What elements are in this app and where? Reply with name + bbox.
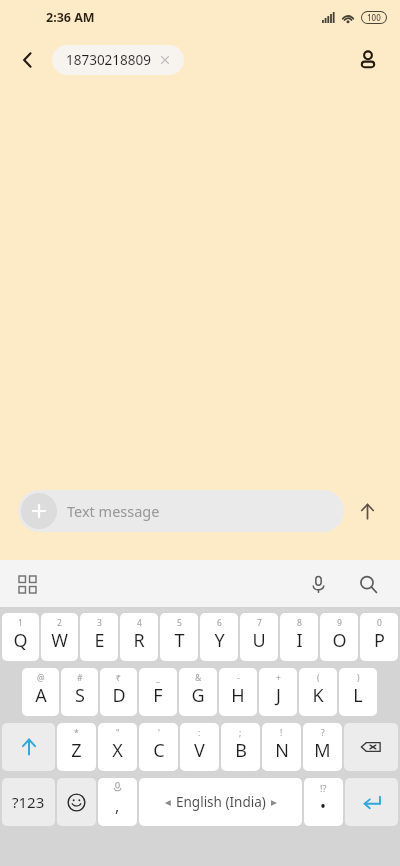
button[interactable]: ₹ bbox=[100, 668, 137, 716]
button[interactable]: Add attachment bbox=[21, 493, 57, 529]
staticText: ' bbox=[158, 727, 160, 739]
button[interactable]: 1 bbox=[2, 613, 39, 661]
staticText: B bbox=[235, 738, 247, 763]
staticText: _ bbox=[156, 672, 160, 684]
button[interactable] bbox=[57, 778, 96, 826]
button[interactable]: * bbox=[57, 723, 96, 771]
button[interactable]: 6 bbox=[200, 613, 238, 661]
button[interactable]: Voice input bbox=[300, 566, 336, 602]
button[interactable]: Search bbox=[350, 566, 386, 602]
button[interactable]: ; bbox=[221, 723, 260, 771]
staticText: Y bbox=[214, 628, 225, 653]
button[interactable]: ?123 bbox=[2, 778, 55, 826]
staticText: !? bbox=[320, 782, 327, 794]
staticText: 4 bbox=[137, 617, 142, 629]
button[interactable]: ◀ bbox=[139, 778, 302, 826]
staticText: ? bbox=[321, 727, 325, 739]
staticText: 7 bbox=[257, 617, 262, 629]
staticText: V bbox=[194, 738, 205, 763]
button[interactable]: Send bbox=[344, 488, 390, 534]
staticText: P bbox=[374, 628, 385, 653]
staticText: N bbox=[275, 738, 289, 763]
staticText: 1 bbox=[18, 617, 23, 629]
button[interactable]: 3 bbox=[80, 613, 118, 661]
staticText: & bbox=[195, 672, 202, 684]
staticText: ( bbox=[317, 672, 320, 684]
staticText: * bbox=[74, 727, 79, 739]
button[interactable]: _ bbox=[139, 668, 177, 716]
button[interactable]: 4 bbox=[120, 613, 158, 661]
staticText: 0 bbox=[377, 617, 382, 629]
button[interactable]: : bbox=[180, 723, 219, 771]
button[interactable]: Keyboard options bbox=[10, 567, 44, 601]
staticText: ◀ bbox=[165, 798, 171, 807]
button[interactable]: & bbox=[179, 668, 217, 716]
button[interactable]: Contact bbox=[348, 40, 388, 80]
staticText: " bbox=[116, 727, 120, 739]
staticText: J bbox=[276, 683, 281, 708]
staticText: • bbox=[320, 795, 327, 817]
staticText: W bbox=[51, 628, 68, 653]
button[interactable]: Add attachment bbox=[18, 490, 344, 532]
staticText: L bbox=[353, 683, 363, 708]
button[interactable]: " bbox=[98, 723, 137, 771]
staticText: , bbox=[115, 795, 120, 817]
staticText: ; bbox=[239, 727, 242, 739]
button[interactable]: ( bbox=[299, 668, 337, 716]
staticText: English (India) bbox=[176, 793, 266, 811]
staticText: 2 bbox=[57, 617, 62, 629]
staticText: 3 bbox=[97, 617, 102, 629]
staticText: R bbox=[133, 628, 145, 653]
staticText: S bbox=[75, 683, 85, 708]
button[interactable] bbox=[344, 723, 398, 771]
staticText: 9 bbox=[337, 617, 342, 629]
staticText: K bbox=[312, 683, 324, 708]
staticText: 2:36 AM bbox=[46, 9, 95, 26]
button[interactable]: 18730218809 bbox=[52, 45, 184, 75]
staticText: ?123 bbox=[12, 792, 45, 812]
staticText: G bbox=[191, 683, 205, 708]
button[interactable]: ? bbox=[303, 723, 342, 771]
staticText: 5 bbox=[177, 617, 182, 629]
button[interactable]: Back bbox=[10, 42, 46, 78]
button[interactable]: 0 bbox=[360, 613, 398, 661]
staticText: Text message bbox=[67, 501, 160, 521]
button[interactable]: 8 bbox=[280, 613, 318, 661]
button[interactable]: 5 bbox=[160, 613, 198, 661]
button[interactable]: - bbox=[219, 668, 257, 716]
staticText: M bbox=[314, 738, 331, 763]
button[interactable]: 9 bbox=[320, 613, 358, 661]
button[interactable]: 2 bbox=[41, 613, 78, 661]
staticText: @ bbox=[37, 672, 45, 684]
staticText: X bbox=[112, 738, 123, 763]
button[interactable] bbox=[345, 778, 398, 826]
button[interactable]: # bbox=[61, 668, 98, 716]
button[interactable]: !? bbox=[304, 778, 343, 826]
staticText: 8 bbox=[297, 617, 302, 629]
staticText: C bbox=[153, 738, 165, 763]
staticText: F bbox=[153, 683, 163, 708]
staticText: - bbox=[237, 672, 240, 684]
button[interactable]: ' bbox=[139, 723, 178, 771]
staticText: ! bbox=[280, 727, 283, 739]
staticText: ) bbox=[357, 672, 360, 684]
staticText: D bbox=[112, 683, 126, 708]
button[interactable]: 7 bbox=[240, 613, 278, 661]
staticText: A bbox=[35, 683, 47, 708]
staticText: U bbox=[252, 628, 266, 653]
button[interactable]: @ bbox=[22, 668, 59, 716]
staticText: 6 bbox=[217, 617, 222, 629]
button[interactable]: ) bbox=[339, 668, 377, 716]
button[interactable]: + bbox=[259, 668, 297, 716]
button[interactable]: , bbox=[98, 778, 137, 826]
staticText: 100 bbox=[367, 12, 381, 23]
staticText: 18730218809 bbox=[66, 51, 151, 69]
staticText: H bbox=[231, 683, 245, 708]
button[interactable] bbox=[2, 723, 55, 771]
staticText: ₹ bbox=[116, 672, 121, 684]
staticText: : bbox=[198, 727, 201, 739]
staticText: + bbox=[276, 672, 281, 684]
button[interactable]: ! bbox=[262, 723, 301, 771]
staticText: # bbox=[77, 672, 83, 684]
staticText: O bbox=[332, 628, 347, 653]
